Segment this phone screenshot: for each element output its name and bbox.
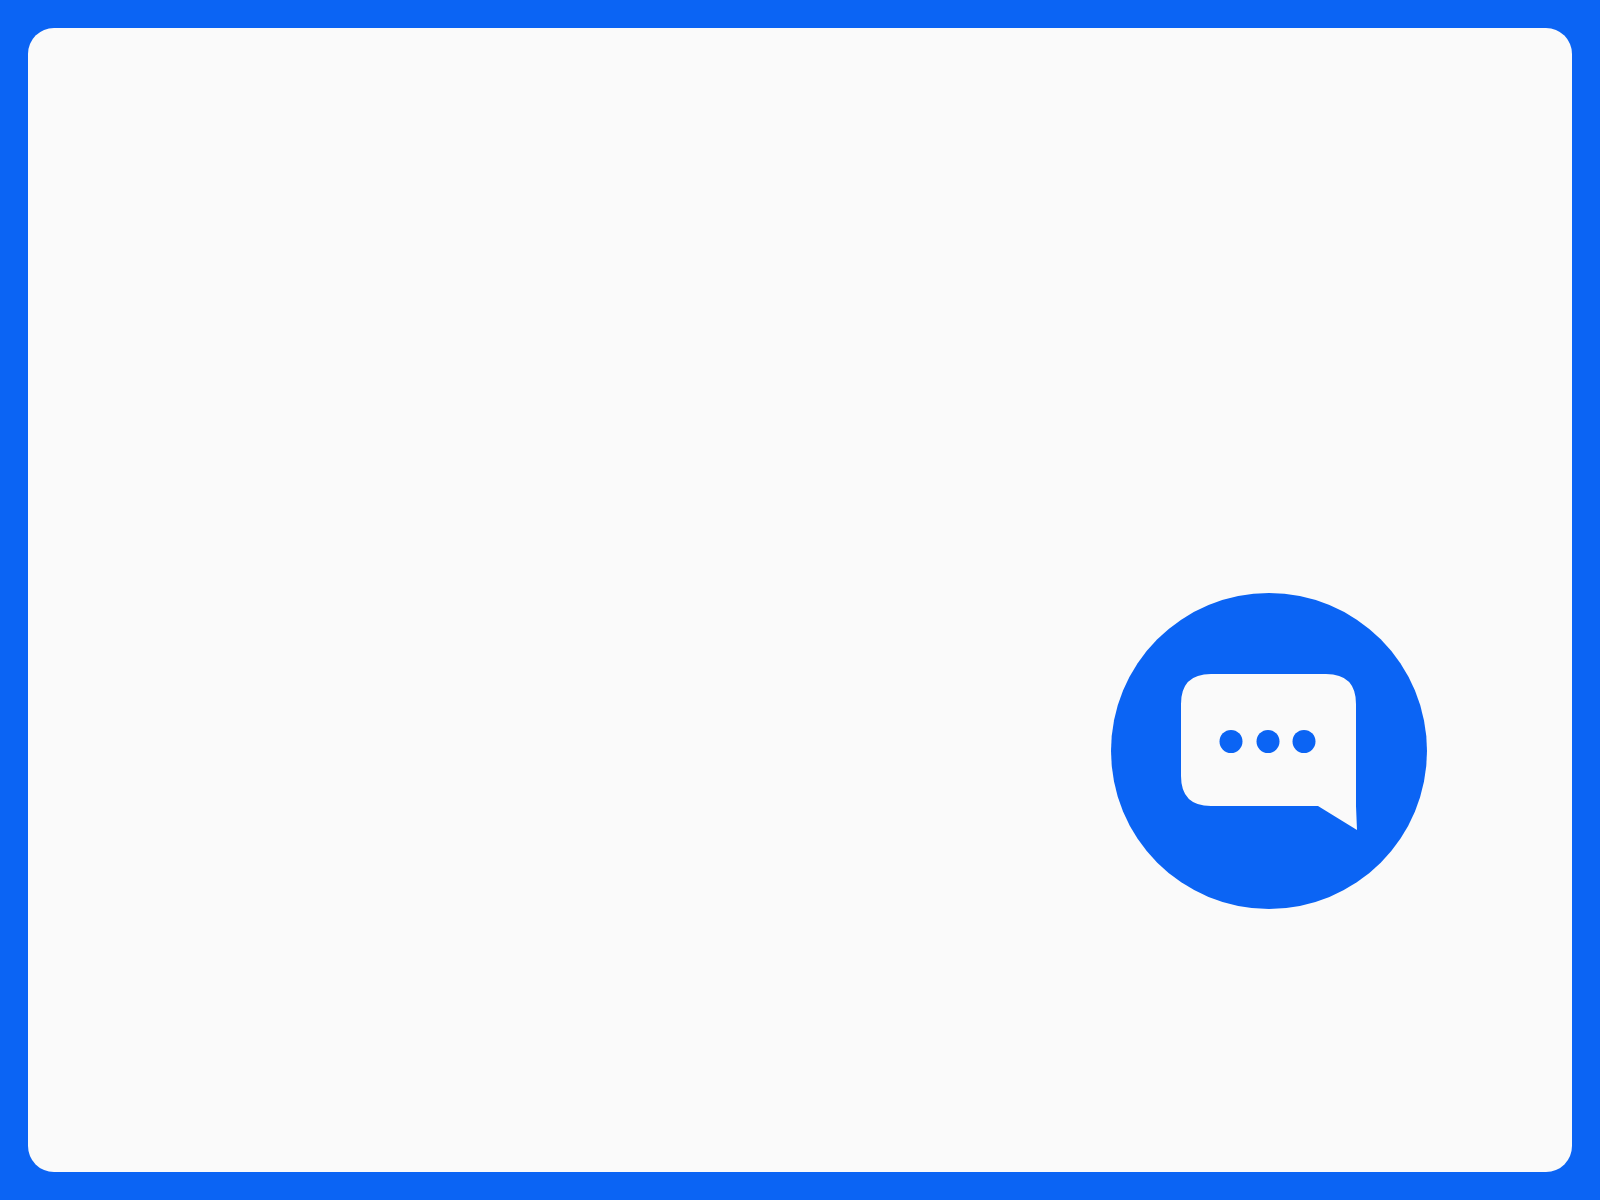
button[interactable]: New message [1111,593,1427,909]
